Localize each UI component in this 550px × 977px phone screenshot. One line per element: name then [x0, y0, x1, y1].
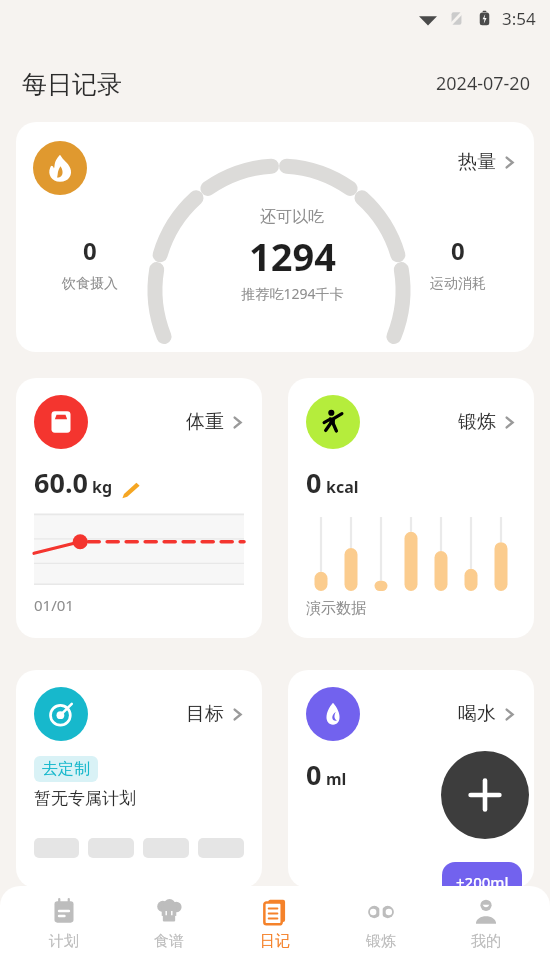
staticText: 0	[451, 234, 465, 267]
button[interactable]: 锻炼	[339, 898, 423, 951]
button[interactable]: 喝水	[288, 670, 534, 888]
staticText: kg	[92, 476, 113, 498]
staticText: 饮食摄入	[62, 275, 118, 293]
button[interactable]: 计划	[22, 898, 106, 951]
staticText: 目标	[186, 702, 224, 726]
button[interactable]: 食谱	[127, 898, 211, 951]
staticText: 推荐吃1294千卡	[241, 284, 344, 303]
staticText: +200ml	[456, 872, 509, 892]
staticText: 体重	[186, 410, 224, 434]
staticText: 喝水	[458, 702, 496, 726]
staticText: 去定制	[42, 759, 90, 779]
staticText: 01/01	[34, 595, 74, 615]
button[interactable]: 目标	[16, 670, 262, 888]
staticText: kcal	[326, 476, 359, 498]
staticText: 锻炼	[366, 932, 396, 951]
staticText: 0	[306, 756, 322, 793]
button[interactable]: Add water record	[441, 751, 529, 839]
button[interactable]: 热量	[16, 122, 534, 352]
staticText: 2024-07-20	[436, 71, 530, 96]
staticText: 演示数据	[306, 599, 366, 618]
staticText: 每日记录	[22, 69, 122, 100]
staticText: 0	[306, 464, 322, 501]
staticText: 暂无专属计划	[34, 788, 136, 809]
staticText: 0	[83, 234, 97, 267]
staticText: ml	[326, 768, 347, 790]
staticText: 我的	[471, 932, 501, 951]
button[interactable]: 锻炼	[288, 378, 534, 638]
button[interactable]: 热量	[458, 150, 516, 174]
staticText: 食谱	[154, 932, 184, 951]
button[interactable]: 体重	[16, 378, 262, 638]
button[interactable]: 日记	[233, 898, 317, 951]
staticText: 3:54	[502, 7, 536, 30]
staticText: 还可以吃	[260, 207, 324, 227]
staticText: 60.0	[34, 464, 88, 501]
button[interactable]: +200ml	[442, 862, 522, 902]
staticText: 热量	[458, 150, 496, 174]
staticText: 计划	[49, 932, 79, 951]
staticText: 运动消耗	[430, 275, 486, 293]
staticText: 日记	[260, 932, 290, 951]
button[interactable]: 我的	[444, 898, 528, 951]
staticText: 1294	[249, 230, 336, 282]
staticText: 锻炼	[458, 410, 496, 434]
